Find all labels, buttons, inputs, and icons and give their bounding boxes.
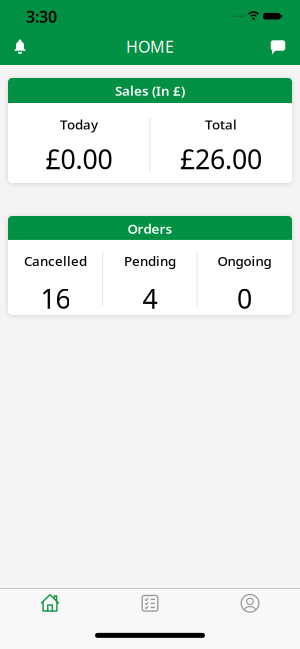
staticText: 4 [142, 281, 157, 316]
staticText: HOME [126, 36, 174, 57]
staticText: Ongoing [218, 252, 272, 270]
staticText: Total [205, 115, 237, 133]
button[interactable] [0, 589, 100, 618]
button[interactable] [200, 589, 300, 618]
staticText: 3:30 [26, 6, 57, 27]
button[interactable] [3, 28, 37, 65]
staticText: Cancelled [24, 252, 87, 270]
staticText: Orders [127, 220, 172, 237]
button[interactable] [261, 29, 295, 66]
staticText: Pending [124, 252, 176, 270]
staticText: £26.00 [180, 141, 262, 177]
staticText: 16 [40, 281, 70, 316]
staticText: Sales (In £) [115, 82, 185, 99]
staticText: £0.00 [45, 141, 112, 177]
staticText: 0 [237, 281, 252, 316]
staticText: Today [60, 115, 98, 133]
button[interactable] [100, 589, 200, 618]
